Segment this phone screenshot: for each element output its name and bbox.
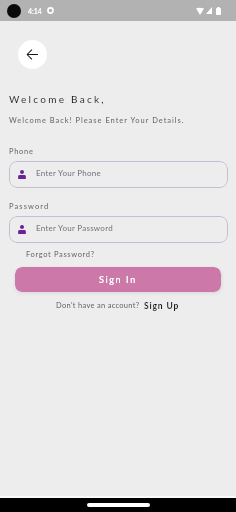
staticText: Sign In xyxy=(99,274,137,285)
staticText: Don't have an account? xyxy=(56,301,140,310)
button[interactable]: Enter Your Phone xyxy=(9,161,228,188)
button[interactable]: Sign Up xyxy=(144,301,180,311)
staticText: Welcome Back! Please Enter Your Details. xyxy=(9,116,185,125)
staticText: Enter Your Phone xyxy=(36,168,101,178)
staticText: Enter Your Password xyxy=(36,223,113,233)
staticText: Phone xyxy=(9,147,34,156)
button[interactable]: Sign In xyxy=(15,267,221,292)
button[interactable]: Forgot Password? xyxy=(26,250,95,259)
staticText: 4:14 xyxy=(28,7,42,15)
button[interactable]: Enter Your Password xyxy=(9,216,228,243)
staticText: Welcome Back, xyxy=(9,93,106,105)
button[interactable]: Back xyxy=(18,40,47,69)
staticText: Password xyxy=(9,202,50,211)
